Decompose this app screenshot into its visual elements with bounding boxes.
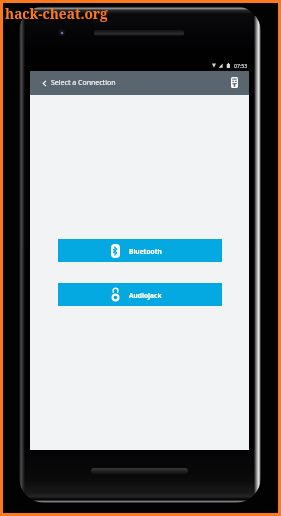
button[interactable]: Bluetooth (58, 239, 222, 262)
staticText: hack-cheat.org (5, 4, 108, 23)
staticText: Audiojack (129, 291, 162, 300)
staticText: 07:53 (234, 62, 248, 69)
button[interactable]: Saved connections (225, 73, 245, 93)
button[interactable]: Audiojack (58, 283, 222, 306)
staticText: Bluetooth (129, 247, 162, 256)
button[interactable]: Back (38, 77, 50, 89)
staticText: Select a Connection (51, 78, 116, 88)
